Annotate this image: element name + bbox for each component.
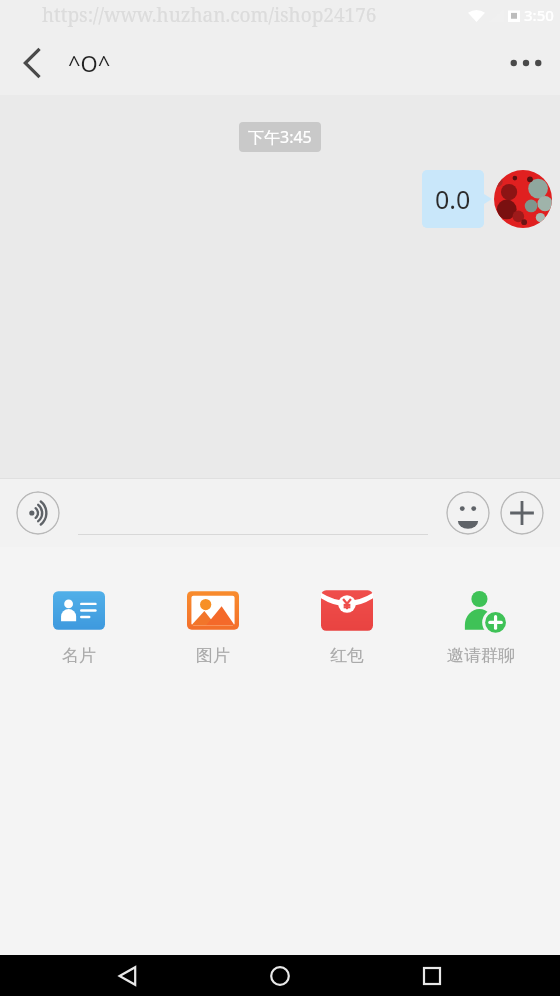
button[interactable]: Voice message [16, 491, 60, 535]
button[interactable]: More functions [500, 491, 544, 535]
button[interactable]: Back [104, 955, 152, 996]
button[interactable]: 名片 [24, 585, 134, 666]
button[interactable]: More options [500, 37, 552, 89]
button[interactable]: Avatar [494, 170, 552, 228]
staticText: 0.0 [435, 182, 471, 216]
button[interactable]: Home [256, 955, 304, 996]
staticText: 邀请群聊 [447, 645, 515, 666]
button[interactable]: 0.0 [422, 170, 492, 228]
staticText: 下午3:45 [248, 126, 312, 148]
button[interactable]: 红包 [292, 585, 402, 666]
button[interactable]: Recent apps [408, 955, 456, 996]
staticText: ^O^ [68, 48, 111, 78]
button[interactable]: Back [10, 41, 54, 85]
button[interactable] [78, 491, 428, 535]
button[interactable]: Emoji [446, 491, 490, 535]
button[interactable]: 邀请群聊 [426, 585, 536, 666]
button[interactable]: 图片 [158, 585, 268, 666]
staticText: 红包 [330, 645, 364, 666]
staticText: https://www.huzhan.com/ishop24176 [42, 2, 377, 28]
staticText: 名片 [62, 645, 96, 666]
staticText: 3:50 [524, 5, 554, 25]
staticText: 图片 [196, 645, 230, 666]
